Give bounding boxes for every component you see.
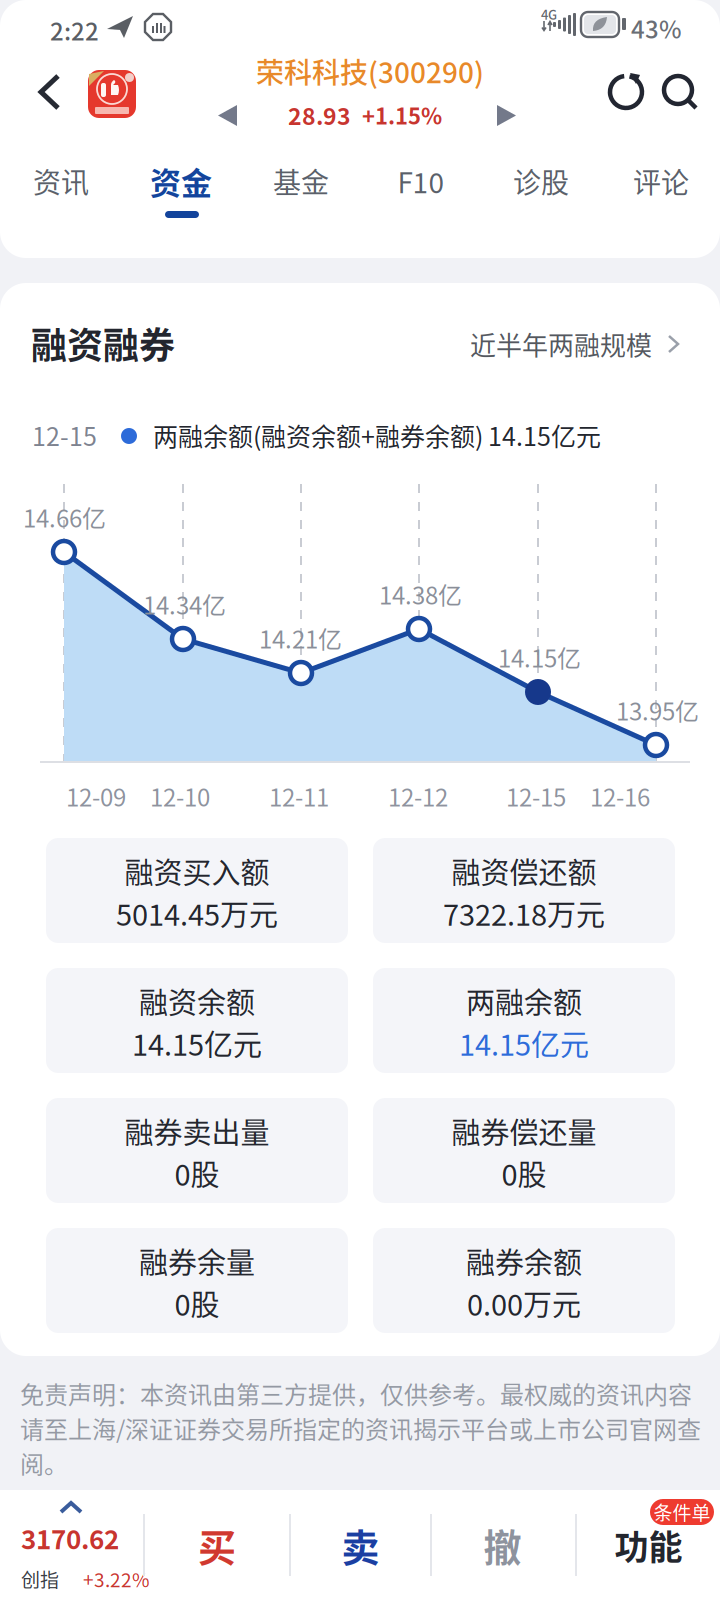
button[interactable]: 功能 bbox=[577, 1490, 720, 1600]
staticText: 28.93 bbox=[288, 98, 351, 132]
staticText: 14.66亿 bbox=[23, 500, 106, 534]
staticText: 0股 bbox=[174, 1282, 219, 1324]
button[interactable]: 3170.62 bbox=[0, 1490, 143, 1600]
staticText: 融资融券 bbox=[31, 317, 175, 369]
staticText: 14.15亿元 bbox=[459, 1022, 589, 1064]
staticText: F10 bbox=[397, 161, 444, 201]
staticText: 14.15亿元 bbox=[132, 1022, 262, 1064]
staticText: 12-12 bbox=[388, 779, 448, 813]
staticText: 3170.62 bbox=[21, 1519, 119, 1557]
staticText: 撤 bbox=[483, 1517, 521, 1572]
staticText: 4G bbox=[541, 5, 557, 23]
staticText: 14.38亿 bbox=[379, 577, 462, 611]
staticText: 融券卖出量 bbox=[124, 1110, 269, 1152]
button[interactable]: 资讯 bbox=[1, 155, 121, 253]
staticText: 5014.45万元 bbox=[116, 892, 278, 934]
staticText: 基金 bbox=[273, 161, 329, 201]
staticText: 功能 bbox=[614, 1520, 682, 1570]
button[interactable]: 诊股 bbox=[481, 155, 601, 253]
staticText: 融券余量 bbox=[139, 1240, 255, 1282]
button[interactable]: 资金 bbox=[121, 155, 241, 253]
staticText: 融资余额 bbox=[139, 980, 255, 1022]
button[interactable]: 撤 bbox=[432, 1490, 573, 1600]
staticText: 43% bbox=[631, 11, 682, 45]
staticText: 创指 bbox=[21, 1565, 59, 1593]
staticText: 近半年两融规模 bbox=[470, 325, 652, 363]
staticText: 7322.18万元 bbox=[443, 892, 605, 934]
staticText: 评论 bbox=[633, 161, 689, 201]
staticText: 条件单 bbox=[653, 1498, 710, 1526]
staticText: +1.15% bbox=[362, 99, 442, 131]
staticText: 0股 bbox=[174, 1152, 219, 1194]
staticText: 13.95亿 bbox=[616, 693, 699, 727]
staticText: 融券偿还量 bbox=[451, 1110, 596, 1152]
button[interactable]: F10 bbox=[361, 155, 481, 253]
staticText: 0股 bbox=[501, 1152, 546, 1194]
staticText: 12-11 bbox=[269, 779, 329, 813]
staticText: 融券余额 bbox=[466, 1240, 582, 1282]
staticText: 资金 bbox=[150, 159, 212, 203]
staticText: 12-16 bbox=[590, 779, 650, 813]
button[interactable]: Brokerage app bbox=[80, 62, 144, 126]
staticText: 卖 bbox=[341, 1517, 379, 1572]
staticText: 两融余额(融资余额+融券余额) bbox=[153, 417, 483, 453]
staticText: 14.15亿 bbox=[498, 640, 581, 674]
staticText: 14.21亿 bbox=[259, 621, 342, 655]
staticText: 0.00万元 bbox=[467, 1282, 581, 1324]
button[interactable]: Search bbox=[650, 62, 716, 120]
staticText: 荣科科技(300290) bbox=[256, 51, 484, 91]
staticText: 12-15 bbox=[506, 779, 566, 813]
staticText: 14.15亿元 bbox=[488, 417, 601, 453]
staticText: 融资买入额 bbox=[124, 850, 269, 892]
button[interactable]: 买 bbox=[145, 1490, 289, 1600]
staticText: 2:22 bbox=[50, 13, 99, 47]
staticText: 12-10 bbox=[150, 779, 210, 813]
staticText: 12-09 bbox=[66, 779, 126, 813]
staticText: 诊股 bbox=[513, 161, 569, 201]
staticText: 12-15 bbox=[32, 417, 97, 453]
staticText: 资讯 bbox=[33, 161, 89, 201]
button[interactable]: 评论 bbox=[601, 155, 720, 253]
button[interactable]: Back bbox=[18, 66, 82, 118]
button[interactable]: Refresh bbox=[590, 62, 654, 120]
staticText: 买 bbox=[198, 1517, 236, 1572]
button[interactable]: 基金 bbox=[241, 155, 361, 253]
staticText: 两融余额 bbox=[466, 980, 582, 1022]
button[interactable]: 近半年两融规模 bbox=[440, 321, 690, 367]
staticText: +3.22% bbox=[83, 1565, 149, 1593]
staticText: 14.34亿 bbox=[143, 587, 226, 621]
staticText: 融资偿还额 bbox=[451, 850, 596, 892]
staticText: 免责声明：本资讯由第三方提供，仅供参考。最权威的资讯内容请至上海/深证证券交易所… bbox=[20, 1376, 701, 1480]
button[interactable]: 卖 bbox=[291, 1490, 430, 1600]
